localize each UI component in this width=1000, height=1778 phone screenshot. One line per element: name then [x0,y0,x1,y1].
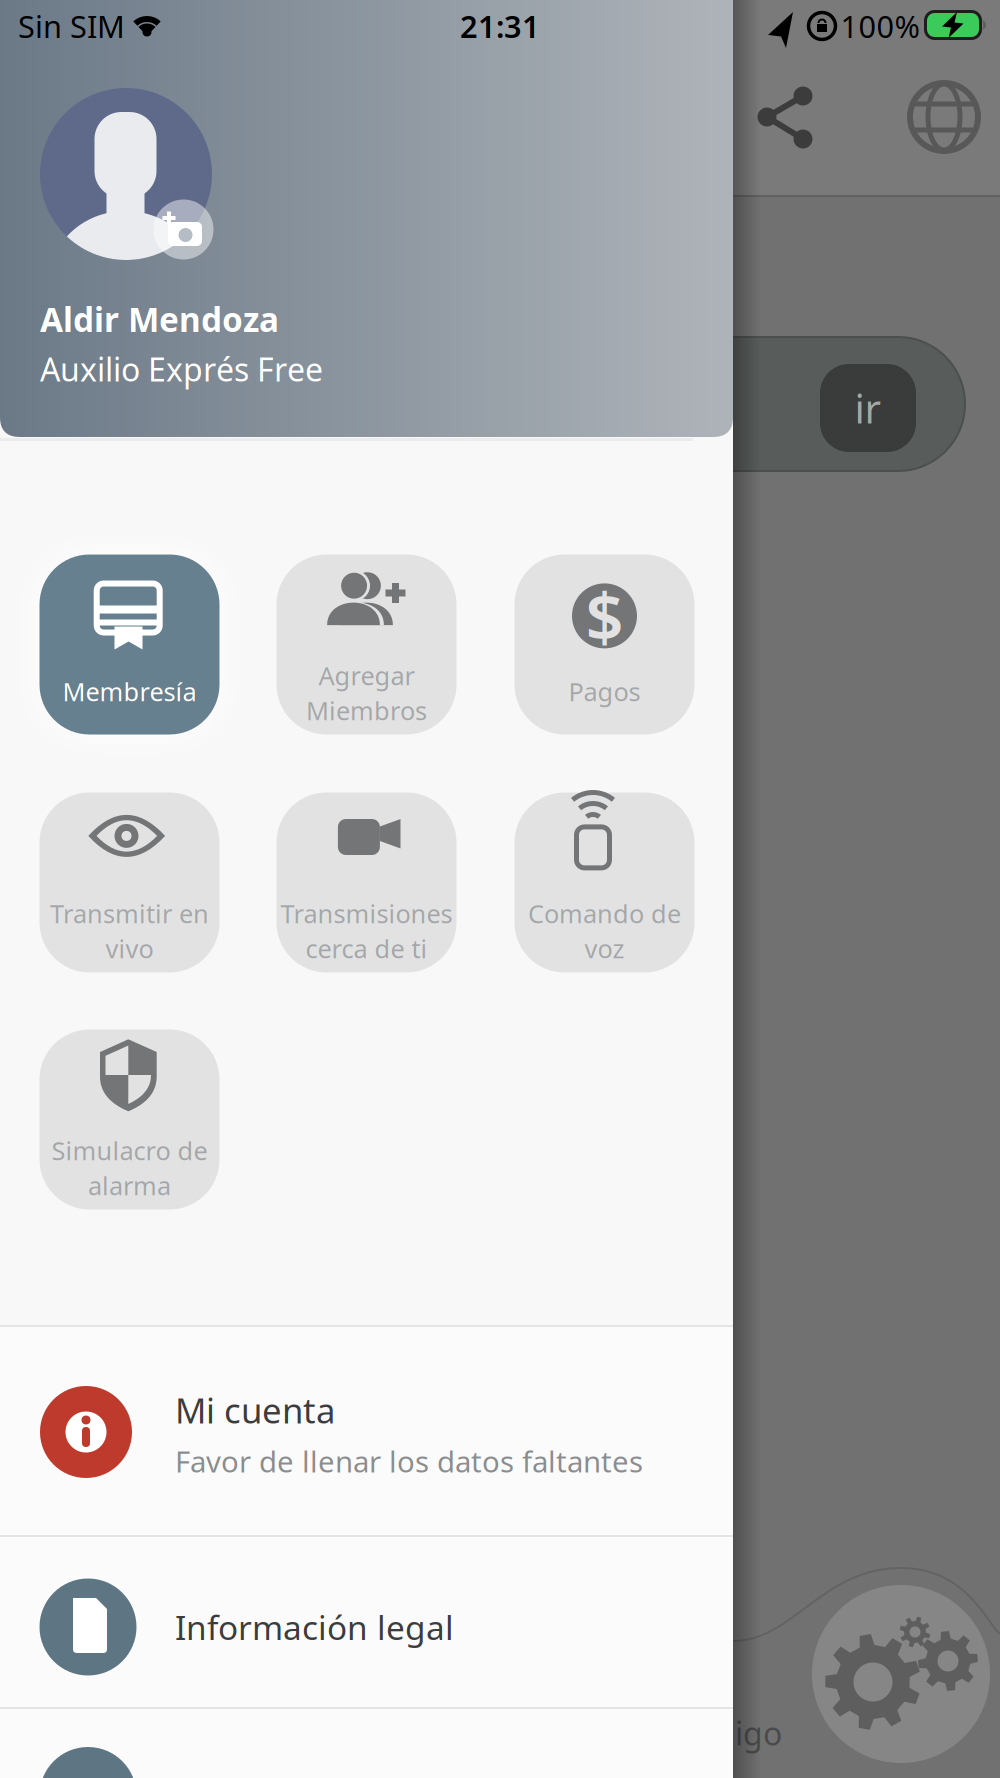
staticText: Membresía [62,675,196,708]
button[interactable]: ir [820,364,916,452]
staticText: cerca de ti [305,932,427,965]
button[interactable]: Simulacro de [39,1029,219,1209]
staticText: Transmitir en [50,897,209,930]
button[interactable]: $ [514,554,694,734]
staticText: Auxilio Exprés Free [40,348,323,390]
staticText: voz [584,932,624,965]
button[interactable]: Configuración [812,1585,990,1763]
button[interactable]: Comando de [514,792,694,972]
staticText: Transmisiones [280,897,452,930]
staticText: 100% [840,6,919,46]
staticText: Información legal [175,1605,454,1649]
staticText: 21:31 [460,6,540,46]
staticText: Aldir Mendoza [40,297,279,341]
staticText: Comando de [528,897,681,930]
staticText: Sin SIM [18,6,125,46]
button[interactable]: Idioma [908,81,980,153]
staticText: igo [735,1712,782,1754]
staticText: Favor de llenar los datos faltantes [175,1441,643,1480]
button[interactable]: Transmisiones [276,792,456,972]
staticText: Mi cuenta [175,1387,335,1433]
button[interactable]: Información legal [0,1537,733,1707]
button[interactable]: Compartir [733,75,837,159]
button[interactable]: Mi cuenta [0,1327,733,1535]
staticText: ir [854,381,881,434]
button[interactable]: Cambiar foto de perfil [20,68,232,280]
staticText: Simulacro de [51,1134,207,1167]
button[interactable]: Membresía [39,554,219,734]
button[interactable]: Transmitir en [39,792,219,972]
staticText: $ [585,572,623,660]
button[interactable]: Más opciones [0,1708,733,1778]
staticText: Pagos [568,675,640,708]
staticText: alarma [88,1169,171,1202]
staticText: Miembros [306,694,427,727]
staticText: vivo [105,932,153,965]
button[interactable]: Agregar [276,554,456,734]
staticText: Agregar [318,659,414,692]
